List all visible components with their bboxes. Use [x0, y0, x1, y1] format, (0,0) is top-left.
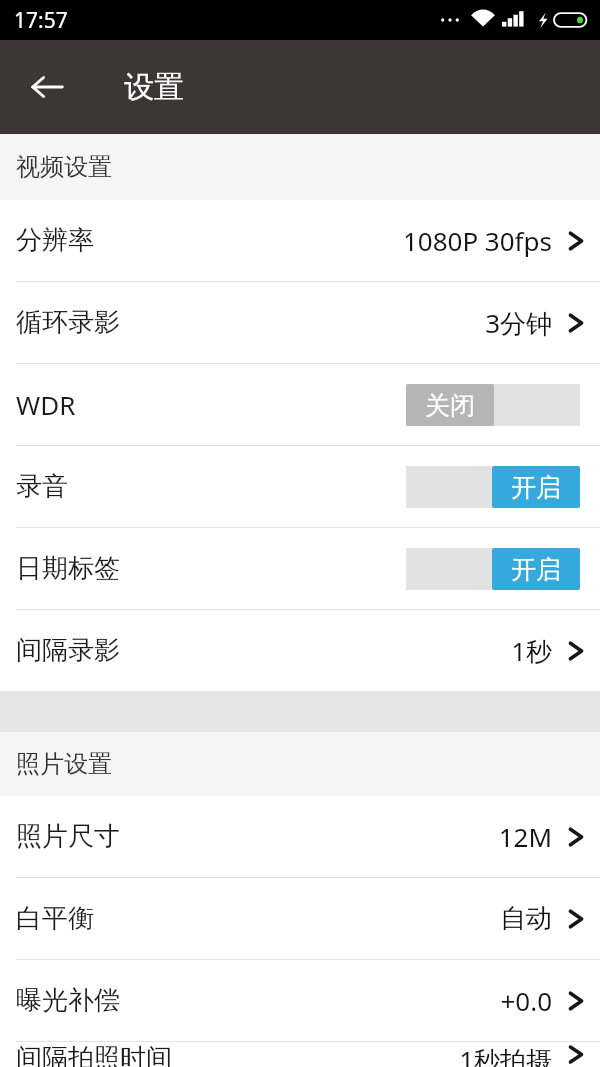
staticText: 照片尺寸	[16, 820, 120, 853]
staticText: WDR	[16, 387, 76, 422]
staticText: 间隔拍照时间	[16, 1042, 172, 1067]
staticText: 17:57	[14, 6, 68, 35]
staticText: 白平衡	[16, 902, 94, 935]
staticText: 照片设置	[16, 749, 112, 779]
staticText: 曝光补偿	[16, 984, 120, 1017]
button[interactable]: Back	[16, 56, 78, 118]
staticText: 分辨率	[16, 224, 94, 257]
staticText: 开启	[511, 472, 561, 503]
staticText: 1080P 30fps	[402, 223, 552, 258]
button[interactable]: 照片尺寸	[0, 796, 600, 877]
staticText: 日期标签	[16, 552, 120, 585]
staticText: +0.0	[500, 983, 552, 1018]
button[interactable]: 曝光补偿	[0, 960, 600, 1041]
staticText: 间隔录影	[16, 634, 120, 667]
button[interactable]: 白平衡	[0, 878, 600, 959]
staticText: 12M	[498, 819, 552, 854]
staticText: 开启	[511, 554, 561, 585]
button[interactable]: 间隔拍照时间	[0, 1042, 600, 1067]
button[interactable]: WDR	[0, 364, 600, 445]
staticText: 自动	[500, 902, 552, 935]
staticText: 1秒	[511, 633, 552, 669]
staticText: 关闭	[425, 390, 475, 421]
button[interactable]: 日期标签	[0, 528, 600, 609]
staticText: 3分钟	[485, 305, 552, 341]
staticText: 设置	[124, 68, 184, 106]
button[interactable]: 分辨率	[0, 200, 600, 281]
button[interactable]: 录音	[0, 446, 600, 527]
button[interactable]: 循环录影	[0, 282, 600, 363]
staticText: 录音	[16, 470, 68, 503]
staticText: 循环录影	[16, 306, 120, 339]
button[interactable]: 间隔录影	[0, 610, 600, 691]
staticText: 1秒拍摄	[459, 1042, 552, 1067]
staticText: 视频设置	[16, 152, 112, 182]
